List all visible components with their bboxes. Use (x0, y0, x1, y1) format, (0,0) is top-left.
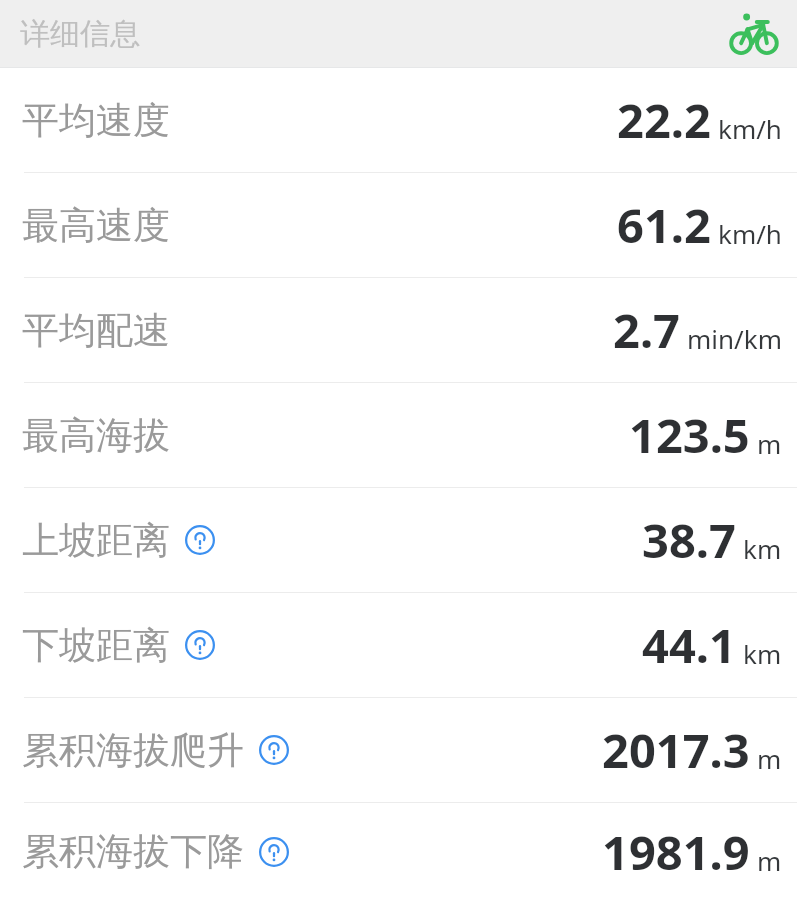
button[interactable]: Help (185, 525, 215, 555)
staticText: m (757, 843, 782, 878)
staticText: 最高速度 (22, 202, 170, 249)
button[interactable]: Help (185, 630, 215, 660)
staticText: km (743, 636, 782, 671)
staticText: 2017.3 (602, 718, 750, 782)
button[interactable]: Cycling (731, 11, 777, 57)
button[interactable]: 上坡距离 (0, 488, 797, 592)
staticText: 123.5 (629, 403, 750, 467)
staticText: m (757, 426, 782, 461)
button[interactable]: 最高海拔 (0, 383, 797, 487)
staticText: 累积海拔爬升 (22, 727, 244, 774)
staticText: 最高海拔 (22, 412, 170, 459)
button[interactable]: 平均配速 (0, 278, 797, 382)
button[interactable]: 累积海拔下降 (0, 803, 797, 900)
staticText: km/h (718, 216, 782, 251)
staticText: km (743, 531, 782, 566)
button[interactable]: Help (259, 837, 289, 867)
staticText: 平均速度 (22, 97, 170, 144)
button[interactable]: 平均速度 (0, 68, 797, 172)
staticText: 38.7 (642, 508, 736, 572)
staticText: 61.2 (617, 193, 711, 257)
staticText: min/km (687, 321, 782, 356)
button[interactable]: 下坡距离 (0, 593, 797, 697)
staticText: 上坡距离 (22, 517, 170, 564)
staticText: 1981.9 (602, 820, 750, 884)
staticText: 22.2 (617, 88, 711, 152)
button[interactable]: 最高速度 (0, 173, 797, 277)
staticText: 累积海拔下降 (22, 828, 244, 875)
staticText: m (757, 741, 782, 776)
staticText: 下坡距离 (22, 622, 170, 669)
staticText: 44.1 (642, 613, 736, 677)
button[interactable]: 累积海拔爬升 (0, 698, 797, 802)
button[interactable]: Help (259, 735, 289, 765)
staticText: 平均配速 (22, 307, 170, 354)
staticText: 2.7 (613, 298, 680, 362)
staticText: 详细信息 (20, 15, 140, 53)
staticText: km/h (718, 111, 782, 146)
